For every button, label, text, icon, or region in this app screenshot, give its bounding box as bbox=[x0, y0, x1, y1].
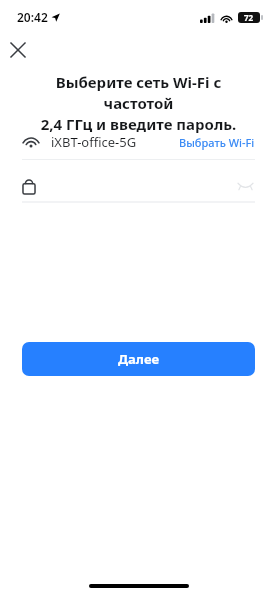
staticText: Выберите сеть Wi-Fi с частотой 2,4 ГГц и… bbox=[24, 72, 253, 135]
button[interactable]: Показать пароль bbox=[235, 175, 255, 195]
button[interactable]: Показать пароль bbox=[22, 170, 255, 200]
staticText: Выбрать Wi-Fi bbox=[179, 135, 255, 150]
button[interactable]: Далее bbox=[22, 342, 255, 376]
button[interactable]: iXBT-office-5G bbox=[22, 126, 255, 158]
button[interactable]: Закрыть bbox=[4, 36, 32, 64]
staticText: 20:42 bbox=[17, 9, 48, 25]
button[interactable]: Выбрать Wi-Fi bbox=[179, 135, 255, 150]
staticText: Далее bbox=[118, 350, 160, 368]
staticText: iXBT-office-5G bbox=[51, 133, 137, 151]
staticText: 72 bbox=[244, 12, 254, 23]
